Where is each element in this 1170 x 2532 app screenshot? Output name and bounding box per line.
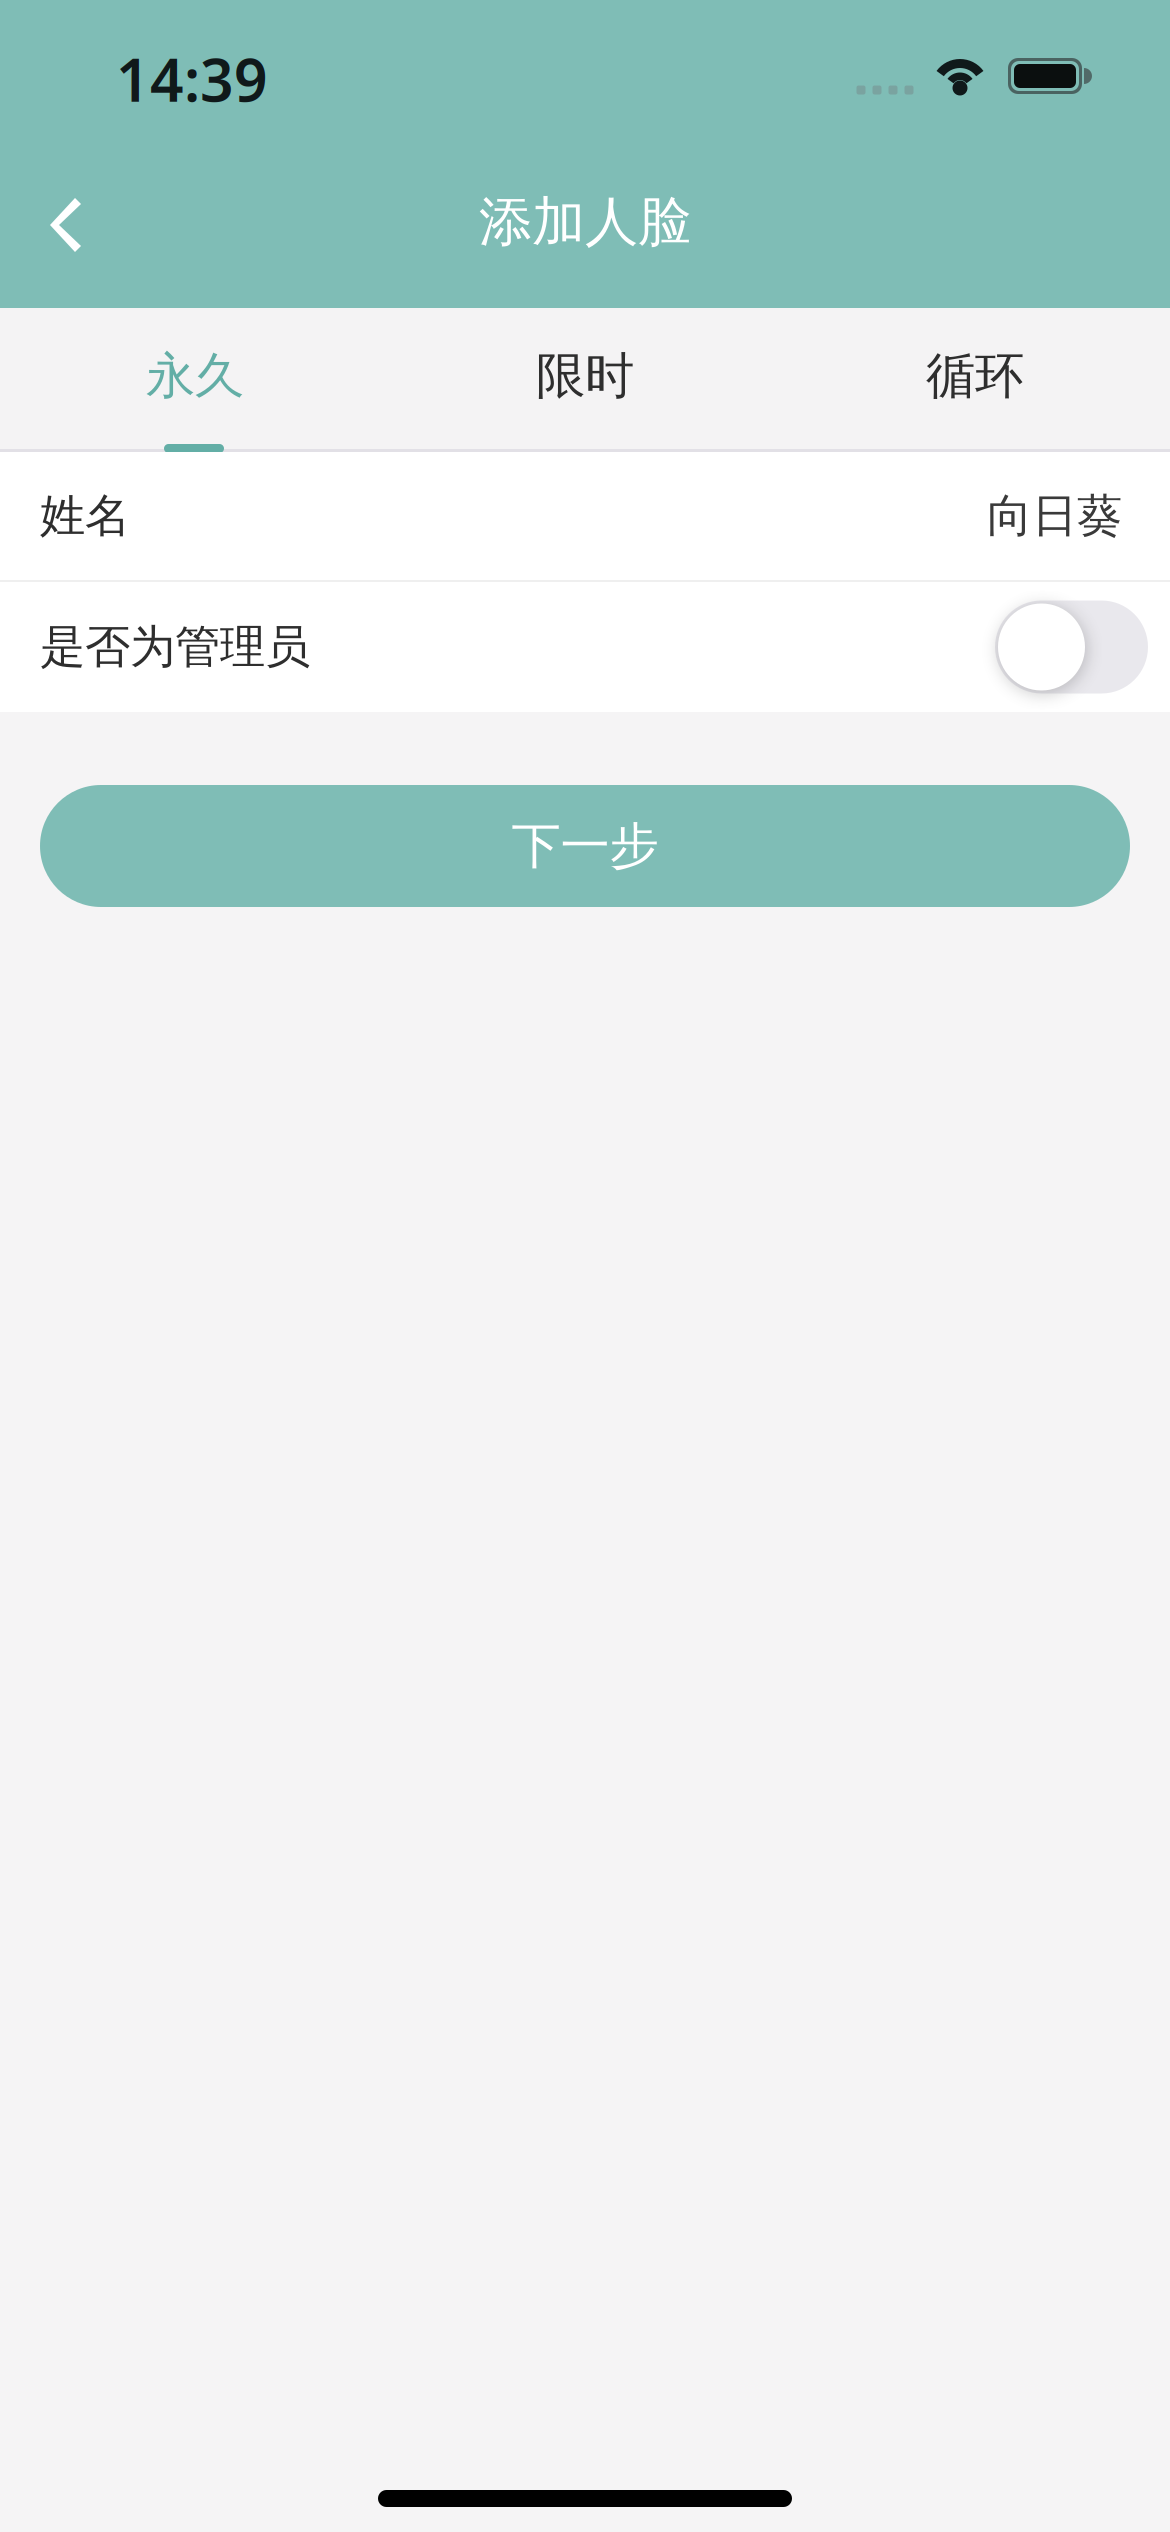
staticText: 下一步 (511, 816, 658, 876)
staticText: 限时 (536, 346, 634, 406)
button[interactable]: 下一步 (40, 785, 1130, 907)
staticText: 永久 (146, 346, 244, 406)
button[interactable] (995, 600, 1148, 693)
staticText: 添加人脸 (479, 189, 691, 255)
staticText: 向日葵 (987, 488, 1122, 544)
staticText: 姓名 (40, 488, 130, 544)
staticText: 是否为管理员 (40, 619, 310, 675)
button[interactable]: 姓名 (0, 452, 1170, 580)
button[interactable]: 限时 (390, 304, 780, 448)
staticText: 14:39 (116, 40, 268, 118)
button[interactable]: 循环 (780, 304, 1170, 448)
button[interactable]: 永久 (0, 304, 390, 448)
button[interactable] (17, 176, 113, 274)
staticText: 循环 (926, 346, 1024, 406)
